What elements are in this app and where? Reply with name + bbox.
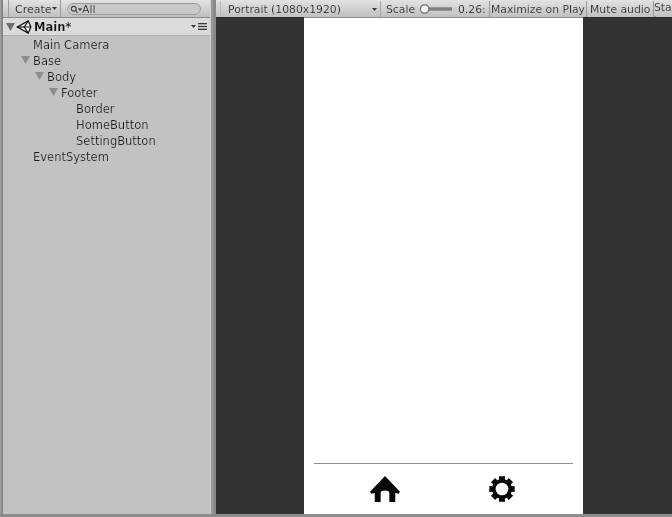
button[interactable]: All (67, 3, 201, 15)
staticText: Base (33, 54, 62, 67)
button[interactable]: Border (0, 100, 213, 116)
button[interactable]: Footer (0, 84, 213, 100)
staticText: HomeButton (76, 118, 149, 131)
staticText: Body (47, 70, 77, 83)
staticText: SettingButton (76, 134, 156, 147)
button[interactable]: EventSystem (0, 148, 213, 164)
staticText: Footer (61, 86, 98, 99)
staticText: Border (76, 102, 115, 115)
staticText: Portrait (1080x1920) (228, 3, 341, 16)
button[interactable]: HomeButton (0, 116, 213, 132)
button[interactable]: SettingButton (0, 132, 213, 148)
staticText: EventSystem (33, 150, 109, 163)
button[interactable]: Main Camera (0, 36, 213, 52)
staticText: Scale (386, 3, 416, 16)
button[interactable]: Body (0, 68, 213, 84)
staticText: Stats (654, 1, 672, 17)
staticText: Main Camera (33, 38, 110, 51)
button[interactable]: Base (0, 52, 213, 68)
button[interactable]: Home (361, 471, 409, 507)
button[interactable]: Mute audio (587, 1, 653, 17)
staticText: Mute audio (590, 3, 651, 16)
button[interactable]: Scene options menu (189, 18, 209, 35)
staticText: Create (15, 3, 52, 16)
button[interactable]: Create (9, 0, 60, 17)
staticText: Maximize on Play (491, 3, 585, 16)
button[interactable]: Stats (654, 1, 672, 17)
button[interactable]: Scale slider (420, 2, 452, 16)
staticText: All (82, 3, 96, 15)
button[interactable]: Settings (478, 471, 526, 507)
staticText: Main* (34, 20, 72, 33)
button[interactable]: Portrait (1080x1920) (221, 1, 380, 17)
staticText: 0.26: (458, 3, 486, 16)
button[interactable]: Maximize on Play (490, 1, 586, 17)
